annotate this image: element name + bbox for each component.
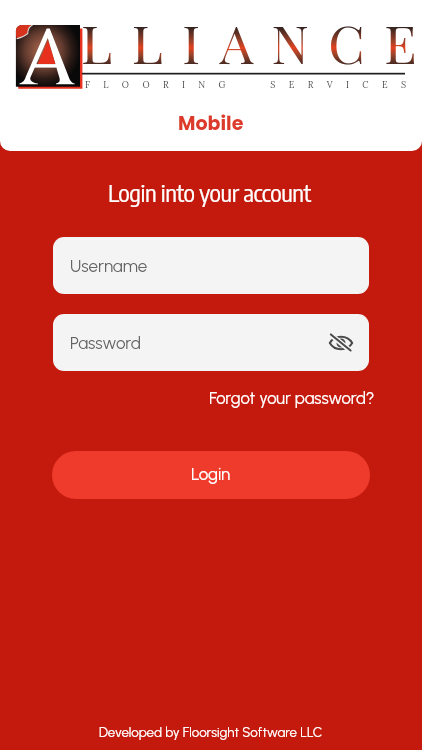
staticText: Mobile <box>178 110 244 137</box>
button[interactable]: Login <box>52 451 370 499</box>
staticText: Login <box>191 464 231 484</box>
staticText: Forgot your password? <box>209 388 375 408</box>
button[interactable]: Forgot your password? <box>209 388 375 408</box>
staticText: Login into your account <box>108 177 311 207</box>
button[interactable]: Password <box>53 314 369 371</box>
staticText: F L O O R I N G S E R V I C E S <box>85 79 412 91</box>
button[interactable]: Show password <box>326 328 356 358</box>
staticText: Password <box>70 333 142 353</box>
button[interactable]: Username <box>53 237 369 294</box>
staticText: Username <box>70 256 148 276</box>
staticText: Developed by Floorsight Software LLC <box>99 724 323 740</box>
staticText: LLIANCE <box>81 7 422 78</box>
